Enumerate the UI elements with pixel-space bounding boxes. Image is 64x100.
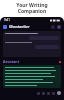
- button[interactable]: Action 2: [47, 92, 50, 95]
- staticText: 9:41: [4, 18, 10, 22]
- staticText: Your Writing Companion: [16, 2, 48, 15]
- button[interactable]: Action 3: [52, 92, 55, 95]
- staticText: Ghostwriter: [9, 24, 30, 29]
- button[interactable]: Profile: [57, 25, 61, 29]
- button[interactable]: Action 1: [42, 92, 45, 95]
- staticText: Assistant: [3, 59, 20, 64]
- button[interactable]: Send: [57, 91, 61, 95]
- button[interactable]: [3, 31, 61, 57]
- button[interactable]: Settings: [51, 25, 55, 29]
- button[interactable]: App logo: [3, 25, 7, 29]
- button[interactable]: [3, 65, 61, 88]
- button[interactable]: Action 0: [37, 92, 40, 95]
